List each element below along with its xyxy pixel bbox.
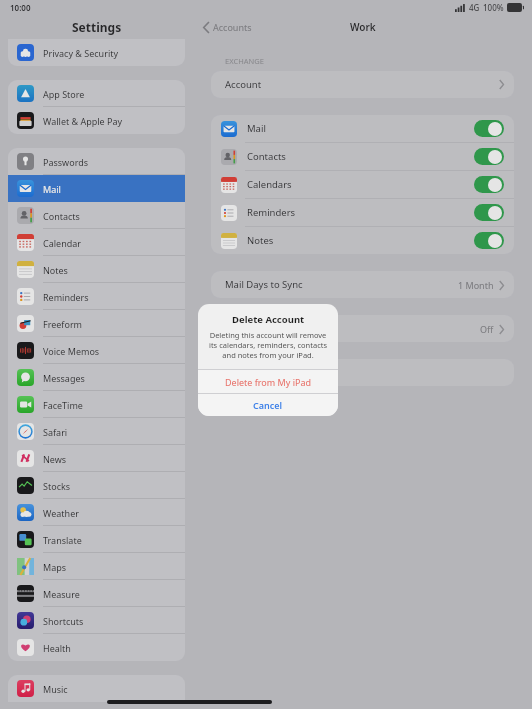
button[interactable]: Account	[211, 71, 514, 98]
button[interactable]: Mail	[8, 175, 185, 202]
button[interactable]: Wallet & Apple Pay	[8, 107, 185, 134]
staticText: Privacy & Security	[43, 47, 119, 59]
button[interactable]: Maps	[8, 553, 185, 580]
staticText: Delete Account	[232, 313, 305, 326]
staticText: App Store	[43, 88, 85, 100]
button[interactable]: Notes	[221, 227, 504, 254]
staticText: Deleting this account will remove its ca…	[208, 330, 328, 360]
staticText: Wallet & Apple Pay	[43, 115, 123, 127]
staticText: Work	[350, 20, 376, 34]
button[interactable]: Toggle	[474, 120, 504, 137]
staticText: Off	[480, 323, 494, 335]
button[interactable]: Toggle	[474, 204, 504, 221]
staticText: 100%	[483, 2, 504, 13]
staticText: Safari	[43, 426, 68, 438]
staticText: Reminders	[247, 206, 296, 219]
button[interactable]: Calendar	[8, 229, 185, 256]
staticText: Settings	[72, 19, 122, 35]
staticText: Music	[43, 683, 68, 695]
staticText: Reminders	[43, 291, 89, 303]
staticText: Shortcuts	[43, 615, 84, 627]
staticText: News	[43, 453, 67, 465]
button[interactable]: Toggle	[474, 148, 504, 165]
button[interactable]: Contacts	[8, 202, 185, 229]
staticText: Cancel	[253, 399, 283, 411]
staticText: Contacts	[247, 150, 286, 163]
staticText: Notes	[247, 234, 274, 247]
staticText: Mail	[247, 122, 266, 135]
staticText: Delete from My iPad	[225, 376, 311, 388]
staticText: Translate	[43, 534, 82, 546]
button[interactable]: Toggle	[474, 232, 504, 249]
staticText: EXCHANGE	[225, 56, 264, 66]
staticText: Freeform	[43, 318, 83, 330]
staticText: Measure	[43, 588, 80, 600]
staticText: Weather	[43, 507, 79, 519]
button[interactable]: Delete from My iPad	[198, 370, 338, 393]
button[interactable]: Measure	[8, 580, 185, 607]
staticText: Contacts	[43, 210, 80, 222]
button[interactable]: Off	[211, 315, 514, 342]
button[interactable]: Delete Account	[211, 359, 514, 386]
staticText: 10:00	[10, 2, 31, 13]
staticText: FaceTime	[43, 399, 83, 411]
staticText: Calendars	[247, 178, 292, 191]
button[interactable]: Calendars	[221, 171, 504, 198]
button[interactable]: Accounts	[201, 19, 254, 35]
staticText: 4G	[469, 2, 480, 13]
button[interactable]: Privacy & Security	[8, 39, 185, 66]
staticText: Passwords	[43, 156, 89, 168]
button[interactable]: Music	[8, 675, 185, 702]
staticText: Voice Memos	[43, 345, 100, 357]
button[interactable]: Toggle	[474, 176, 504, 193]
button[interactable]: Mail Days to Sync	[211, 271, 514, 298]
button[interactable]: Voice Memos	[8, 337, 185, 364]
button[interactable]: Reminders	[8, 283, 185, 310]
button[interactable]: Stocks	[8, 472, 185, 499]
staticText: Messages	[43, 372, 85, 384]
staticText: Calendar	[43, 237, 81, 249]
staticText: Delete Account	[225, 366, 293, 379]
button[interactable]: Cancel	[198, 394, 338, 416]
button[interactable]: Contacts	[221, 143, 504, 170]
staticText: Accounts	[213, 21, 252, 33]
staticText: Health	[43, 642, 71, 654]
staticText: Mail	[43, 183, 61, 195]
staticText: Maps	[43, 561, 67, 573]
staticText: Account	[225, 78, 262, 91]
staticText: Notes	[43, 264, 68, 276]
button[interactable]: App Store	[8, 80, 185, 107]
button[interactable]: Translate	[8, 526, 185, 553]
staticText: Stocks	[43, 480, 71, 492]
button[interactable]: Notes	[8, 256, 185, 283]
button[interactable]: Shortcuts	[8, 607, 185, 634]
button[interactable]: Health	[8, 634, 185, 661]
button[interactable]: Safari	[8, 418, 185, 445]
button[interactable]: Reminders	[221, 199, 504, 226]
button[interactable]: News	[8, 445, 185, 472]
button[interactable]: Messages	[8, 364, 185, 391]
staticText: Mail Days to Sync	[225, 278, 303, 291]
button[interactable]: FaceTime	[8, 391, 185, 418]
button[interactable]: Weather	[8, 499, 185, 526]
button[interactable]: Freeform	[8, 310, 185, 337]
staticText: 1 Month	[458, 279, 494, 291]
button[interactable]: Mail	[221, 115, 504, 142]
button[interactable]: Passwords	[8, 148, 185, 175]
